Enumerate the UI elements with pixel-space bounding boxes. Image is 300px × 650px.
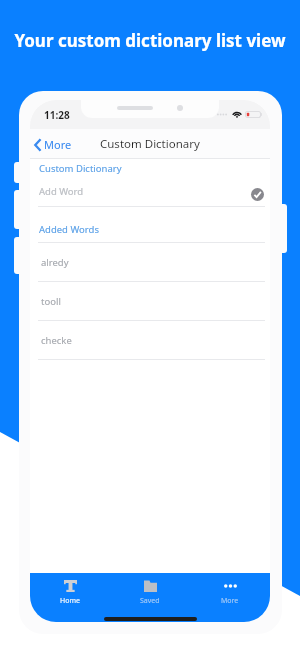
staticText: Home (60, 596, 80, 606)
staticText: Custom Dictionary (100, 136, 200, 152)
staticText: Add Word (39, 185, 84, 198)
staticText: checke (41, 334, 72, 347)
button[interactable]: More (34, 137, 72, 152)
button[interactable]: alredy (30, 243, 270, 281)
other: Confirm (251, 188, 264, 201)
staticText: Custom Dictionary (39, 162, 122, 175)
button[interactable]: checke (30, 321, 270, 359)
staticText: Added Words (39, 223, 99, 236)
button[interactable]: tooll (30, 282, 270, 320)
button[interactable]: Home (30, 574, 110, 606)
staticText: Your custom dictionary list view (14, 29, 286, 52)
staticText: tooll (41, 295, 61, 308)
staticText: 11:28 (44, 108, 70, 122)
button[interactable]: More (190, 574, 270, 606)
button[interactable]: Saved (110, 574, 190, 606)
button[interactable]: Add Word (30, 176, 270, 206)
staticText: More (221, 596, 239, 606)
staticText: Saved (140, 596, 160, 606)
staticText: alredy (41, 256, 69, 269)
staticText: More (44, 137, 72, 152)
